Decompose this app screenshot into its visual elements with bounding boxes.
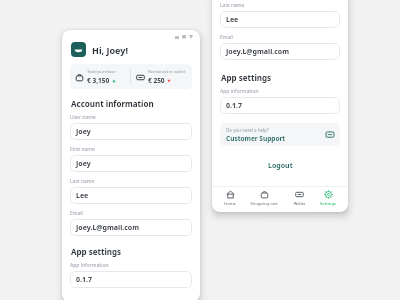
- button[interactable]: Joey: [70, 155, 192, 172]
- staticText: User name: [70, 114, 96, 121]
- button[interactable]: Settings: [318, 189, 338, 208]
- staticText: Wallet: [293, 201, 306, 207]
- staticText: Settings: [320, 201, 336, 207]
- button[interactable]: Do you need a help?: [220, 123, 340, 146]
- staticText: Hi, Joey!: [92, 44, 128, 56]
- staticText: App settings: [71, 246, 122, 257]
- staticText: Remained in wallet: [148, 69, 186, 75]
- button[interactable]: Lee: [70, 187, 192, 204]
- staticText: App information: [220, 88, 259, 95]
- staticText: Shopping cart: [250, 201, 278, 207]
- button[interactable]: Lee: [220, 11, 340, 28]
- other: Chat with support: [326, 131, 334, 139]
- staticText: Total purchase: [87, 69, 116, 75]
- staticText: Joey: [76, 127, 91, 137]
- staticText: Joey.L@gmail.com: [76, 223, 140, 233]
- button[interactable]: Profile avatar: [71, 42, 86, 57]
- staticText: € 3,150: [87, 76, 110, 85]
- staticText: Account information: [71, 98, 154, 109]
- button[interactable]: Joey.L@gmail.com: [220, 43, 340, 60]
- button[interactable]: Logout: [212, 158, 348, 174]
- button[interactable]: Home: [222, 189, 238, 208]
- staticText: Joey.L@gmail.com: [226, 47, 290, 57]
- button[interactable]: Shopping cart: [248, 189, 280, 208]
- button[interactable]: Joey.L@gmail.com: [70, 219, 192, 236]
- button[interactable]: 0.1.7: [220, 97, 340, 114]
- staticText: Lee: [226, 15, 239, 25]
- button[interactable]: 0.1.7: [70, 271, 192, 288]
- staticText: App settings: [221, 72, 272, 83]
- button[interactable]: Wallet: [291, 189, 308, 208]
- staticText: Email: [220, 34, 233, 41]
- staticText: Home: [224, 201, 236, 207]
- staticText: Last name: [220, 2, 245, 9]
- button[interactable]: Joey: [70, 123, 192, 140]
- staticText: Customer Support: [226, 134, 286, 143]
- staticText: Logout: [268, 161, 293, 171]
- staticText: Lee: [76, 191, 89, 201]
- staticText: 0.1.7: [76, 275, 92, 285]
- staticText: Email: [70, 210, 83, 217]
- staticText: First name: [70, 146, 95, 153]
- staticText: Last name: [70, 178, 95, 185]
- staticText: Do you need a help?: [226, 127, 269, 133]
- staticText: € 250: [148, 76, 165, 85]
- staticText: 0.1.7: [226, 101, 242, 111]
- staticText: Joey: [76, 159, 91, 169]
- staticText: App information: [70, 262, 109, 269]
